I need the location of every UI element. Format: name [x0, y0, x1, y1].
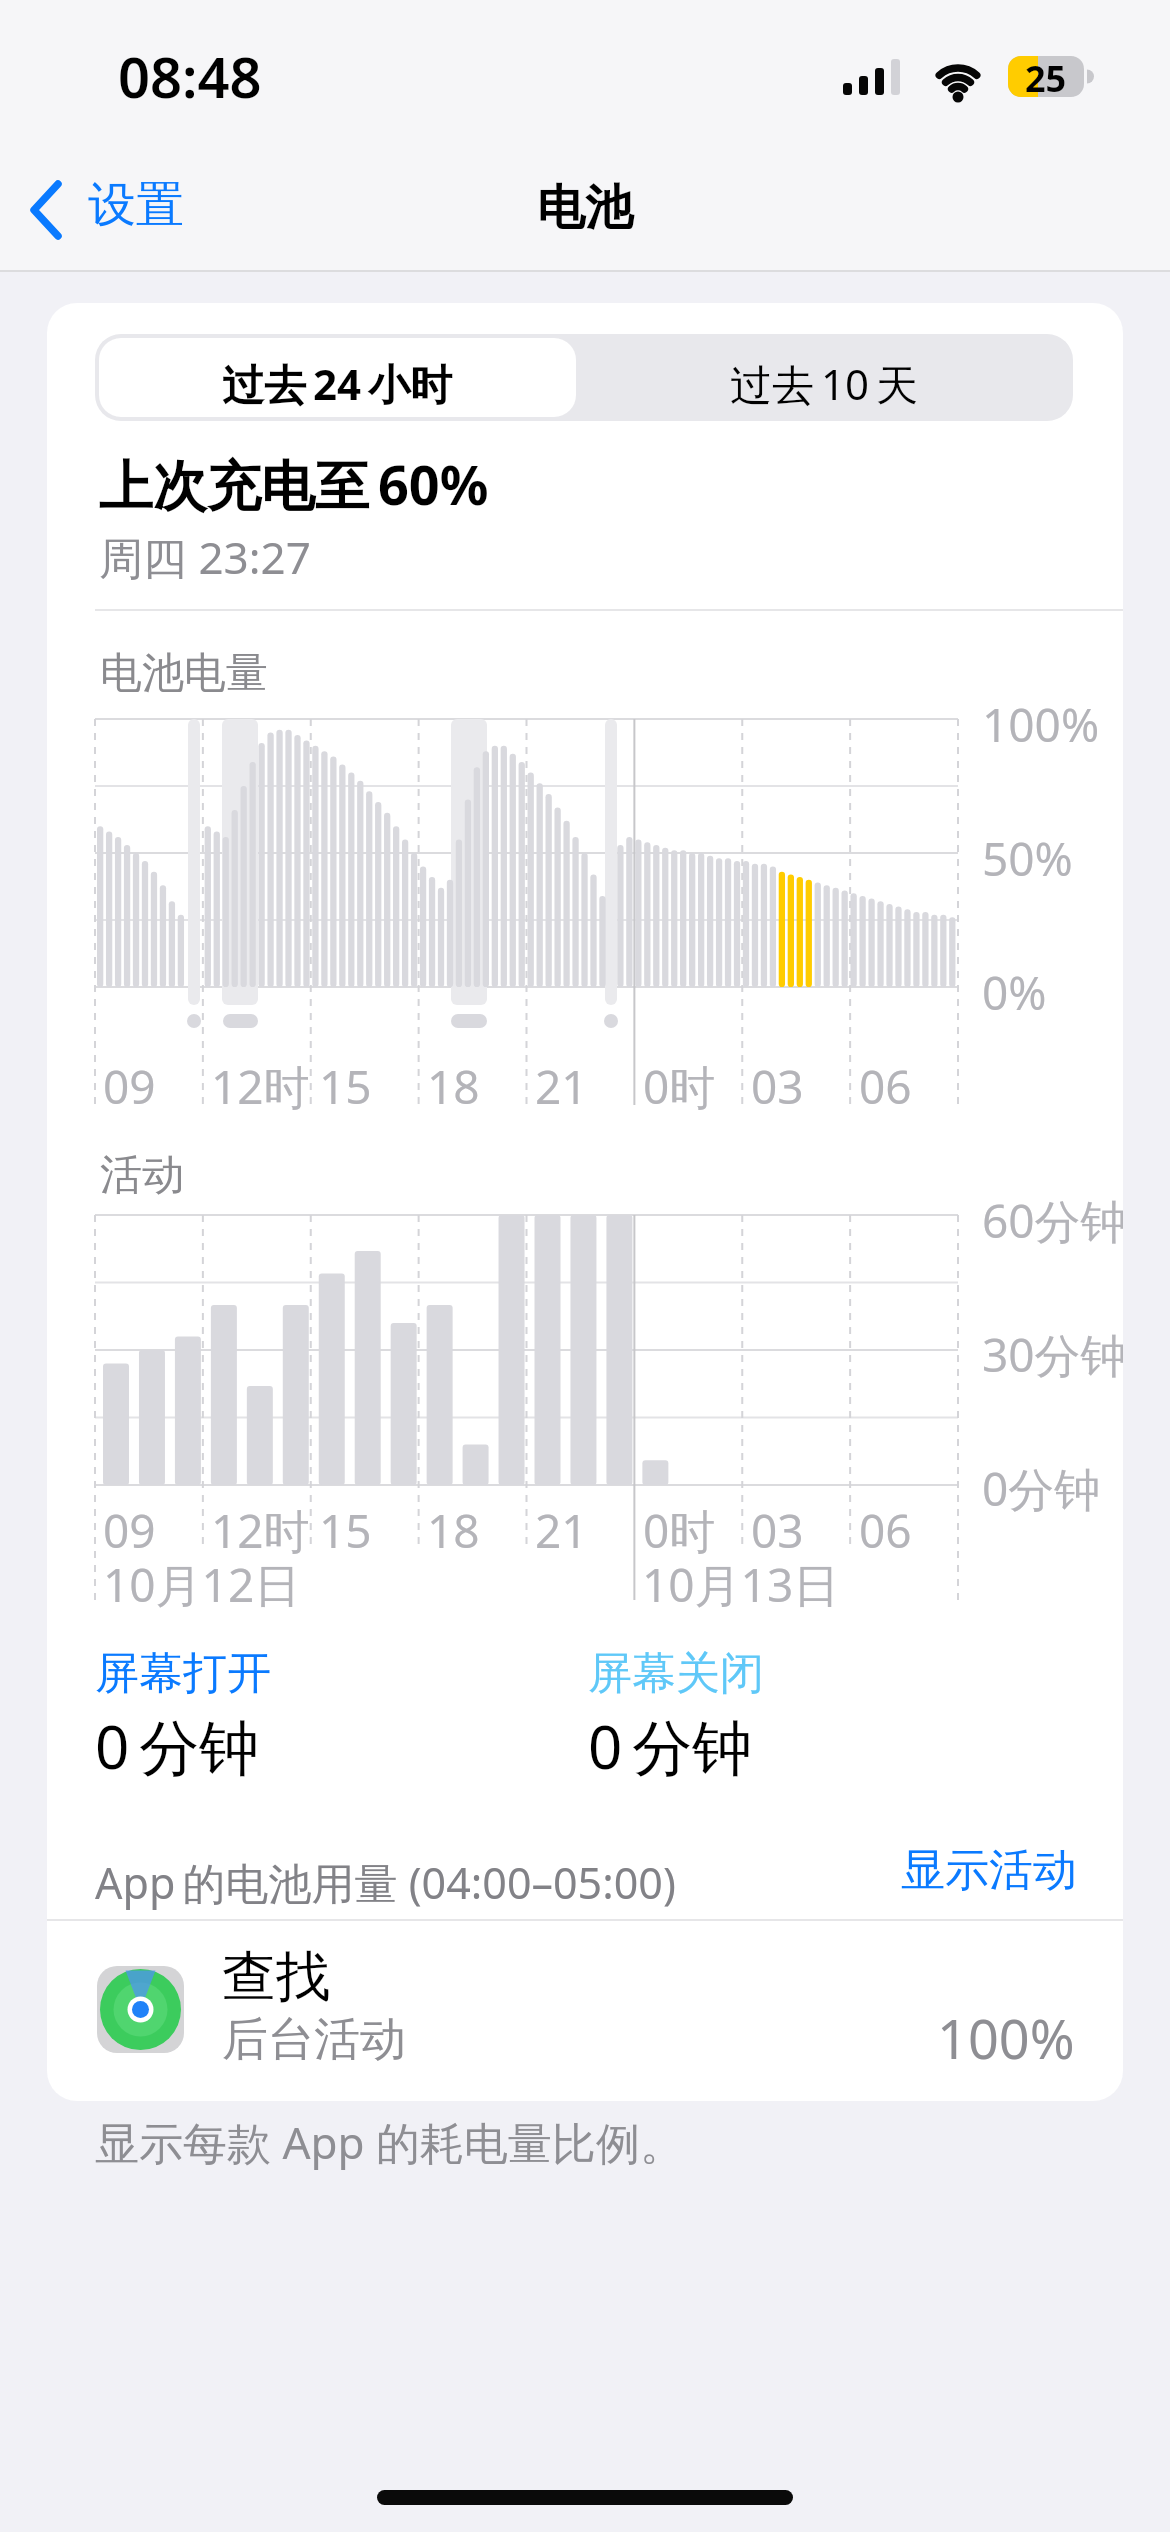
staticText: 18	[427, 1499, 480, 1562]
staticText: 06	[859, 1055, 912, 1118]
button[interactable]	[99, 338, 576, 417]
staticText: 03	[751, 1055, 804, 1118]
staticText: 电池电量	[100, 647, 268, 700]
staticText: 显示活动	[901, 1843, 1077, 1898]
button[interactable]: 显示活动	[477, 1843, 1077, 1898]
staticText: 10月13日	[642, 1553, 840, 1616]
staticText: 06	[859, 1499, 912, 1562]
staticText: 后台活动	[222, 2011, 406, 2069]
staticText: 0分钟	[982, 1457, 1101, 1520]
staticText: 查找	[222, 1943, 330, 2011]
staticText: 12时	[211, 1055, 310, 1118]
staticText: 15	[319, 1055, 372, 1118]
staticText: 03	[751, 1499, 804, 1562]
button[interactable]	[47, 1928, 1123, 2088]
staticText: 30分钟	[982, 1323, 1123, 1386]
staticText: 设置	[88, 175, 184, 235]
button[interactable]	[576, 338, 1073, 417]
staticText: 0%	[982, 961, 1047, 1024]
staticText: 过去 24 小时	[222, 355, 452, 412]
staticText: 显示每款 App 的耗电量比例。	[95, 2112, 685, 2172]
staticText: 21	[535, 1055, 588, 1118]
staticText: 09	[103, 1055, 156, 1118]
button[interactable]: 设置	[20, 175, 194, 235]
staticText: 21	[535, 1499, 588, 1562]
staticText: 100%	[937, 2001, 1075, 2075]
staticText: App 的电池用量 (04:00–05:00)	[95, 1853, 676, 1912]
staticText: 15	[319, 1499, 372, 1562]
staticText: 上次充电至 60%	[99, 447, 489, 521]
staticText: 周四 23:27	[99, 527, 311, 587]
staticText: 活动	[100, 1149, 184, 1202]
staticText: 09	[103, 1499, 156, 1562]
staticText: 25	[1025, 54, 1067, 103]
staticText: 0 分钟	[588, 1705, 753, 1787]
staticText: 12时	[211, 1499, 310, 1562]
staticText: 08:48	[118, 38, 262, 114]
staticText: 0时	[643, 1055, 716, 1118]
staticText: 10月12日	[103, 1553, 301, 1616]
staticText: 50%	[982, 827, 1073, 890]
staticText: 60分钟	[982, 1189, 1123, 1252]
staticText: 0时	[643, 1499, 716, 1562]
staticText: 电池	[537, 178, 633, 238]
staticText: 0 分钟	[95, 1705, 260, 1787]
staticText: 18	[427, 1055, 480, 1118]
staticText: 100%	[982, 693, 1100, 756]
staticText: 屏幕打开	[95, 1646, 271, 1701]
staticText: 屏幕关闭	[588, 1646, 764, 1701]
staticText: 过去 10 天	[730, 355, 918, 412]
